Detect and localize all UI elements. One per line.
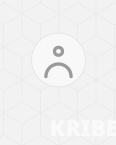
staticText: KRIBB xyxy=(49,112,116,142)
